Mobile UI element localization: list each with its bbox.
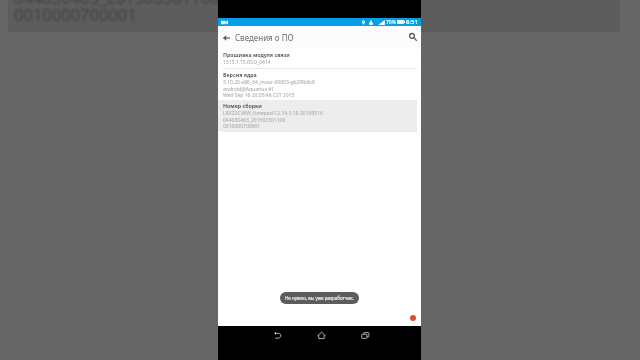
button[interactable]: Версия ядра: [218, 69, 417, 100]
staticText: 70%: [386, 19, 396, 26]
staticText: LRX22C.WW_fonepad-12.14.3.18-20150916 04…: [223, 110, 323, 129]
staticText: 044030463_201503301108: [14, 0, 220, 8]
staticText: 0010000700001: [14, 3, 137, 25]
staticText: Сведения о ПО: [235, 32, 294, 43]
staticText: 1515.1.15.65.0_0414: [223, 59, 271, 66]
staticText: Версия ядра: [223, 71, 257, 78]
staticText: Прошивка модуля связи: [223, 51, 290, 58]
button[interactable]: Back: [270, 328, 284, 342]
button[interactable]: Номер сборки: [218, 100, 417, 131]
button[interactable]: Home: [314, 328, 328, 342]
staticText: 3.10.20-x86_64_moor-00003-gb2l9b9c8 andr…: [223, 79, 315, 98]
staticText: Номер сборки: [223, 102, 262, 109]
button[interactable]: Search: [406, 30, 419, 43]
staticText: Не нужно, вы уже разработчик.: [285, 295, 354, 301]
button[interactable]: Прошивка модуля связи: [218, 49, 417, 68]
button[interactable]: Back: [220, 31, 233, 44]
button[interactable]: Recents: [358, 328, 372, 342]
staticText: 8:51: [406, 18, 418, 26]
